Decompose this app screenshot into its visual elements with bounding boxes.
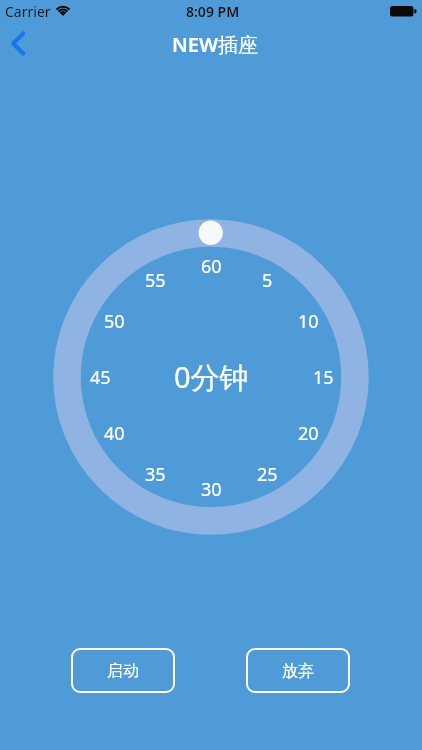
button[interactable]: 启动 (71, 648, 175, 693)
staticText: 60 (201, 254, 222, 279)
staticText: 15 (313, 365, 334, 390)
staticText: 35 (145, 462, 166, 487)
staticText: Carrier (5, 2, 51, 21)
staticText: 启动 (107, 661, 139, 681)
button[interactable] (0, 22, 48, 72)
staticText: 30 (201, 477, 222, 502)
staticText: NEW插座 (172, 31, 259, 58)
staticText: 放弃 (282, 661, 314, 681)
staticText: 45 (90, 365, 111, 390)
staticText: 20 (298, 421, 319, 446)
staticText: 10 (298, 309, 319, 334)
staticText: 5 (262, 268, 273, 293)
staticText: 25 (257, 462, 278, 487)
staticText: 40 (104, 421, 125, 446)
staticText: 55 (145, 268, 166, 293)
staticText: 50 (104, 309, 125, 334)
staticText: 8:09 PM (186, 2, 240, 21)
button[interactable]: 放弃 (246, 648, 350, 693)
staticText: 0分钟 (174, 357, 249, 397)
